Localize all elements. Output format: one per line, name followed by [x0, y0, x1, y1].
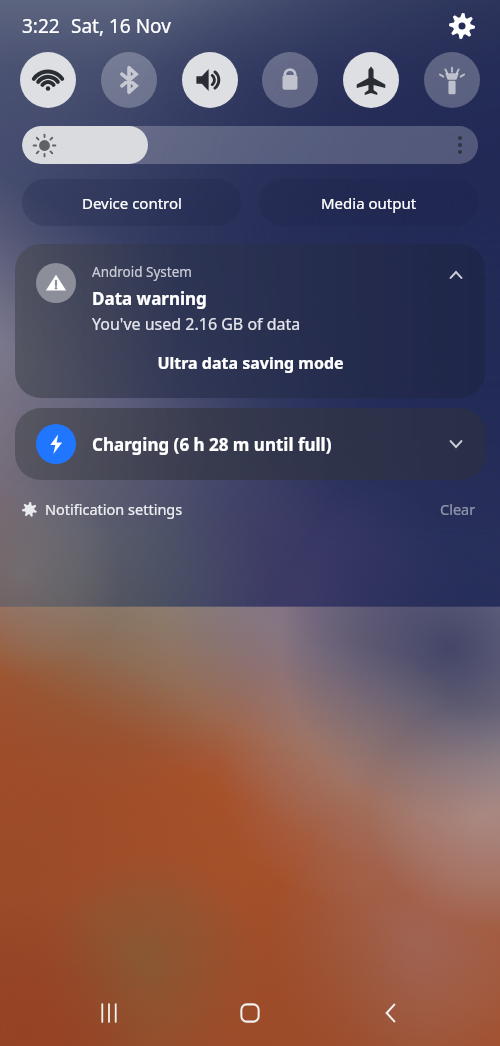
button[interactable]: Notification settings — [18, 497, 187, 521]
staticText: Notification settings — [45, 499, 183, 519]
button[interactable]: Airplane mode — [343, 52, 399, 108]
staticText: Media output — [321, 193, 417, 213]
button[interactable]: Media output — [259, 179, 478, 226]
button[interactable]: Home — [218, 981, 282, 1045]
button[interactable]: Ultra data saving mode — [143, 348, 358, 378]
button[interactable]: Recents — [77, 981, 141, 1045]
staticText: You've used 2.16 GB of data — [92, 313, 301, 335]
staticText: Android System — [92, 263, 192, 281]
button[interactable]: Device control — [22, 179, 241, 226]
button[interactable]: Bluetooth — [101, 52, 157, 108]
button[interactable]: Collapse — [443, 262, 469, 288]
button[interactable]: Collapse — [15, 244, 485, 398]
button[interactable]: Sound — [182, 52, 238, 108]
button[interactable]: Auto rotate lock — [262, 52, 318, 108]
staticText: 3:22 — [22, 13, 60, 39]
button[interactable]: Back — [359, 981, 423, 1045]
button[interactable]: Charging (6 h 28 m until full) — [15, 408, 485, 480]
button[interactable]: Settings — [440, 4, 484, 48]
button[interactable]: Brightness — [22, 126, 478, 164]
staticText: Charging (6 h 28 m until full) — [92, 433, 332, 456]
button[interactable]: Flashlight — [424, 52, 480, 108]
button[interactable]: Wi-Fi — [20, 52, 76, 108]
staticText: Clear — [440, 499, 476, 519]
staticText: Data warning — [92, 287, 207, 310]
staticText: Device control — [82, 193, 182, 213]
button[interactable]: Expand — [443, 431, 469, 457]
staticText: Sat, 16 Nov — [71, 13, 171, 39]
button[interactable]: Clear — [434, 497, 482, 521]
staticText: Ultra data saving mode — [157, 352, 344, 374]
